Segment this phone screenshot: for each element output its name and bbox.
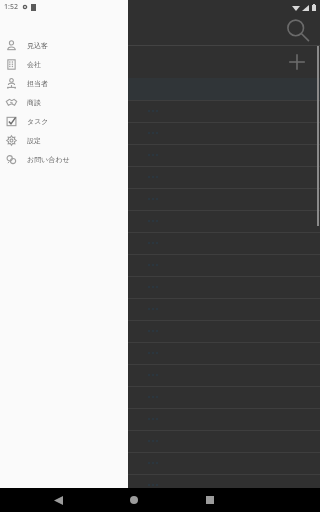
button[interactable]: Search <box>284 17 310 43</box>
staticText: 会社 <box>27 60 41 69</box>
button[interactable]: More options <box>0 452 320 474</box>
button[interactable]: More options <box>0 298 320 320</box>
button[interactable]: More options <box>0 254 320 276</box>
staticText: 1:52 <box>4 2 18 12</box>
button[interactable]: タスク <box>0 112 128 131</box>
button[interactable]: More options <box>0 210 320 232</box>
button[interactable]: More options <box>0 430 320 452</box>
button[interactable]: More options <box>0 474 320 496</box>
button[interactable]: Back <box>44 488 72 512</box>
button[interactable]: Home <box>120 488 148 512</box>
button[interactable]: More options <box>0 342 320 364</box>
button[interactable]: More options <box>0 496 320 512</box>
staticText: 見込客 <box>27 41 48 50</box>
button[interactable]: 担当者 <box>0 74 128 93</box>
button[interactable]: More options <box>0 188 320 210</box>
button[interactable]: More options <box>0 100 320 122</box>
staticText: お問い合わせ <box>27 155 70 164</box>
staticText: 担当者 <box>27 79 48 88</box>
button[interactable]: 設定 <box>0 131 128 150</box>
button[interactable]: Add <box>284 49 310 75</box>
button[interactable] <box>0 78 320 100</box>
button[interactable]: More options <box>0 276 320 298</box>
button[interactable]: More options <box>0 364 320 386</box>
button[interactable]: More options <box>0 386 320 408</box>
staticText: タスク <box>27 117 49 126</box>
button[interactable]: More options <box>0 144 320 166</box>
button[interactable]: お問い合わせ <box>0 150 128 169</box>
staticText: 設定 <box>27 136 41 145</box>
staticText: 商談一覧 <box>14 56 54 69</box>
button[interactable]: 会社 <box>0 55 128 74</box>
button[interactable]: More options <box>0 166 320 188</box>
button[interactable]: 商談 <box>0 93 128 112</box>
button[interactable]: More options <box>0 122 320 144</box>
button[interactable]: Recent apps <box>196 488 224 512</box>
button[interactable]: More options <box>0 232 320 254</box>
button[interactable]: 見込客 <box>0 36 128 55</box>
staticText: 商談 <box>27 98 41 107</box>
button[interactable]: More options <box>145 477 161 493</box>
button[interactable]: More options <box>0 320 320 342</box>
button[interactable]: More options <box>0 408 320 430</box>
